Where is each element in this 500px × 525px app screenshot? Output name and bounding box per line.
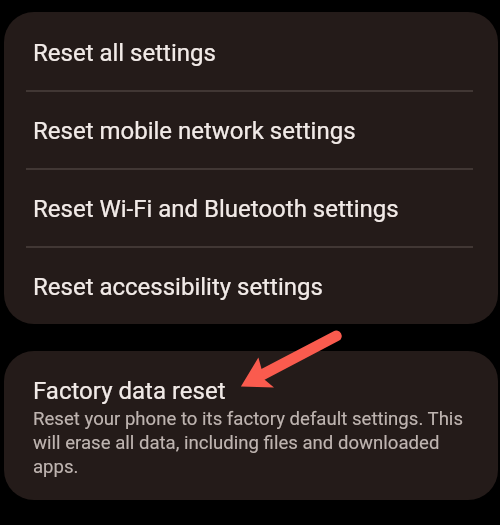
button[interactable]: Reset accessibility settings bbox=[4, 246, 498, 324]
staticText: Reset all settings bbox=[33, 39, 216, 67]
staticText: Reset mobile network settings bbox=[33, 117, 356, 145]
button[interactable]: Reset Wi-Fi and Bluetooth settings bbox=[4, 168, 498, 246]
other: Arrow pointing at Factory data reset bbox=[0, 0, 500, 525]
staticText: Reset accessibility settings bbox=[33, 273, 323, 301]
button[interactable]: Factory data reset bbox=[4, 351, 498, 500]
staticText: Reset your phone to its factory default … bbox=[33, 408, 468, 478]
staticText: Factory data reset bbox=[33, 377, 226, 405]
button[interactable]: Reset mobile network settings bbox=[4, 90, 498, 168]
button[interactable]: Reset all settings bbox=[4, 12, 498, 90]
staticText: Reset Wi-Fi and Bluetooth settings bbox=[33, 195, 399, 223]
